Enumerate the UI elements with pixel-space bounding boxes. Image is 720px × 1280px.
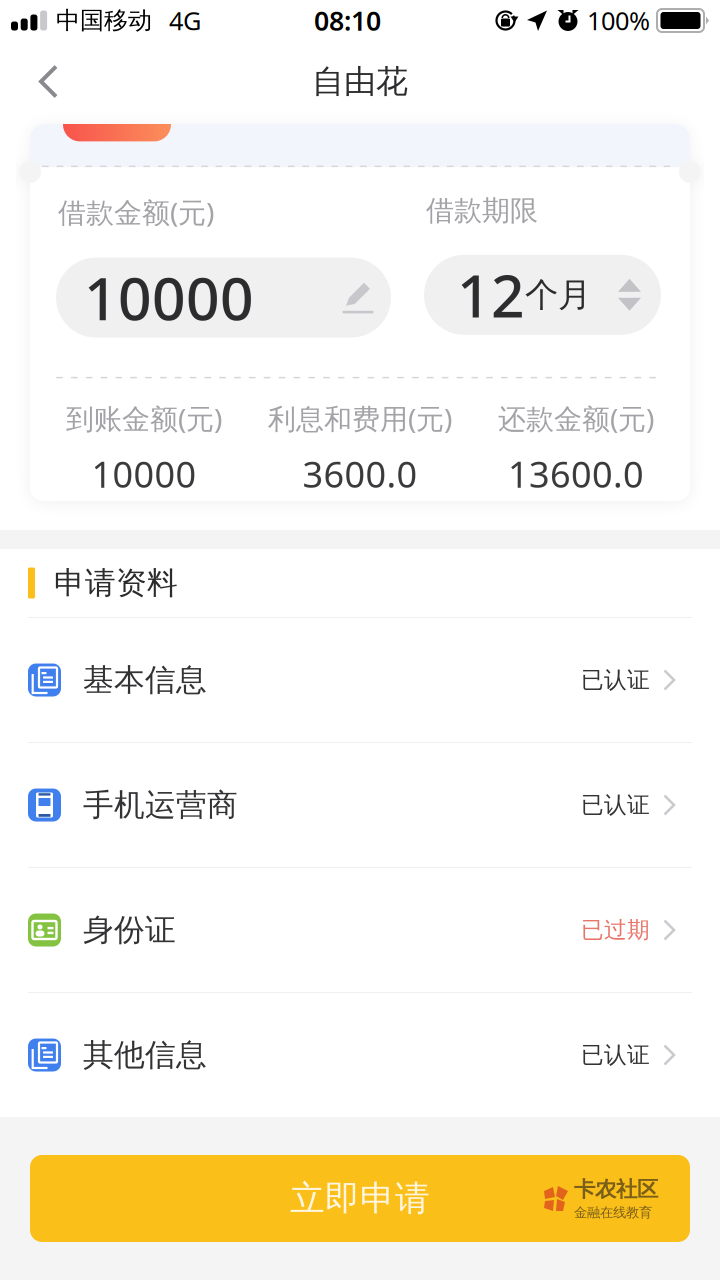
staticText: 10000 — [91, 450, 196, 498]
staticText: 4G — [169, 4, 201, 37]
button[interactable]: 身份证 — [0, 868, 720, 992]
staticText: 10000 — [84, 259, 254, 336]
button[interactable]: Back — [0, 50, 82, 112]
staticText: 借款金额(元) — [58, 193, 214, 231]
staticText: 13600.0 — [508, 450, 644, 498]
staticText: 还款金额(元) — [498, 400, 654, 437]
staticText: 12 — [457, 256, 525, 334]
staticText: 申请资料 — [54, 564, 178, 602]
button[interactable]: 其他信息 — [0, 993, 720, 1117]
staticText: 100% — [587, 4, 650, 37]
staticText: 3600.0 — [302, 450, 417, 498]
staticText: 恭喜您，额度已提升 — [191, 86, 416, 117]
staticText: 利息和费用(元) — [268, 400, 452, 437]
staticText: 金融在线教育 — [574, 1204, 652, 1221]
staticText: 借款期限 — [426, 193, 538, 228]
staticText: 卡农社区 — [574, 1176, 658, 1202]
staticText: 手机运营商 — [83, 786, 238, 824]
button[interactable]: 立即申请 — [30, 1155, 690, 1242]
staticText: 已认证 — [581, 1041, 650, 1069]
staticText: 已认证 — [581, 791, 650, 819]
staticText: 中国移动 — [56, 6, 152, 35]
staticText: 个月 — [525, 274, 591, 315]
staticText: 自由花 — [312, 62, 408, 101]
button[interactable]: 手机运营商 — [0, 743, 720, 867]
staticText: 已认证 — [581, 666, 650, 694]
staticText: 身份证 — [83, 911, 176, 949]
staticText: 立即申请 — [290, 1177, 430, 1220]
button[interactable]: 基本信息 — [0, 618, 720, 742]
staticText: 08:10 — [314, 3, 381, 38]
staticText: 基本信息 — [83, 661, 207, 699]
staticText: 其他信息 — [83, 1036, 207, 1074]
staticText: 已过期 — [581, 916, 650, 944]
staticText: 到账金额(元) — [66, 400, 222, 437]
